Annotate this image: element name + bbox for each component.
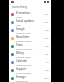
- staticText: Support: [16, 67, 26, 71]
- staticText: 8:02: [44, 21, 49, 24]
- button[interactable]: Social updates: [9, 18, 51, 26]
- staticText: Fri: [46, 61, 49, 64]
- button[interactable]: Newsletter: [9, 34, 51, 42]
- staticText: Tue: [45, 29, 49, 32]
- staticText: Meeting soon: [16, 63, 32, 66]
- staticText: Wed: [44, 77, 49, 80]
- button[interactable]: Support: [9, 66, 51, 74]
- staticText: something: [12, 5, 28, 9]
- staticText: Invoice ready: [16, 55, 32, 58]
- button[interactable]: Team: [9, 42, 51, 50]
- staticText: Almost full: [16, 79, 28, 82]
- staticText: Storage: [16, 75, 26, 79]
- button[interactable]: Google: [9, 26, 51, 34]
- staticText: Thu: [45, 69, 49, 72]
- staticText: Newsletter: [16, 35, 30, 39]
- staticText: Weekly digest: [16, 39, 32, 42]
- staticText: Google: [16, 27, 25, 31]
- staticText: Standup notes: [16, 47, 33, 50]
- button[interactable]: Calendar: [9, 58, 51, 66]
- staticText: Security alert: [16, 31, 31, 34]
- staticText: Mon: [44, 37, 49, 40]
- button[interactable]: something: [9, 4, 51, 10]
- button[interactable]: Billing: [9, 50, 51, 58]
- staticText: Promotions: [16, 11, 31, 15]
- staticText: Calendar: [16, 59, 28, 63]
- staticText: Sun: [45, 45, 49, 48]
- staticText: Ticket update: [16, 71, 32, 74]
- button[interactable]: Promotions: [9, 10, 51, 18]
- staticText: Deals: [16, 15, 23, 18]
- staticText: Social updates: [16, 19, 34, 23]
- button[interactable]: Storage: [9, 74, 51, 82]
- staticText: Billing: [16, 51, 24, 55]
- staticText: Team: [16, 43, 23, 47]
- staticText: Sat: [45, 53, 49, 56]
- staticText: New: [16, 23, 21, 26]
- staticText: 9:41: [44, 13, 49, 16]
